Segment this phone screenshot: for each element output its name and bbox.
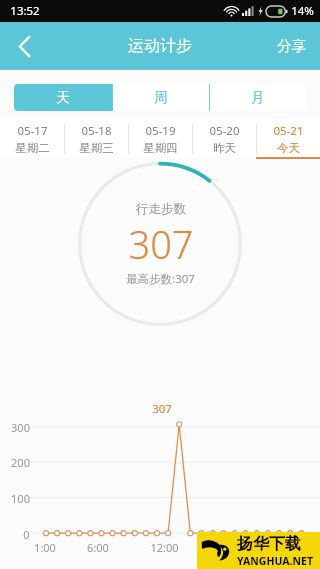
staticText: 12:00 [150, 540, 179, 555]
staticText: 昨天 [213, 141, 236, 155]
button[interactable]: Back [0, 22, 48, 70]
staticText: 今天 [277, 141, 300, 155]
button[interactable]: 05-21 [256, 118, 320, 159]
staticText: 13:52 [10, 3, 40, 19]
staticText: 100 [11, 491, 30, 506]
staticText: 运动计步 [128, 36, 192, 56]
staticText: 6:00 [87, 540, 109, 555]
button[interactable]: 月 [209, 84, 306, 111]
staticText: 天 [56, 89, 70, 106]
staticText: 05-20 [209, 123, 240, 139]
staticText: 0 [23, 527, 30, 542]
button[interactable]: 05-19 [128, 118, 192, 159]
button[interactable]: 天 [14, 84, 112, 111]
staticText: 307 [152, 401, 172, 417]
staticText: 05-18 [81, 123, 112, 139]
staticText: 月 [251, 89, 265, 106]
button[interactable]: 周 [112, 84, 209, 111]
button[interactable]: 05-18 [64, 118, 128, 159]
staticText: 05-21 [273, 123, 304, 139]
staticText: 1:00 [34, 540, 56, 555]
staticText: 星期二 [15, 141, 50, 155]
button[interactable]: 05-17 [0, 118, 64, 159]
staticText: 14% [291, 3, 314, 19]
staticText: 05-19 [145, 123, 176, 139]
button[interactable]: 分享 [263, 22, 320, 70]
staticText: 星期三 [79, 141, 114, 155]
staticText: 分享 [277, 37, 306, 55]
staticText: 300 [11, 420, 30, 435]
staticText: 星期四 [143, 141, 178, 155]
staticText: 05-17 [17, 123, 48, 139]
staticText: 扬华下载 [237, 534, 301, 554]
button[interactable]: 05-20 [192, 118, 256, 159]
staticText: 周 [154, 89, 168, 106]
staticText: 行走步数 [136, 201, 186, 217]
staticText: YANGHUA.NET [237, 554, 313, 568]
staticText: 最高步数:307 [126, 271, 195, 287]
staticText: 307 [128, 218, 194, 270]
staticText: 200 [11, 455, 30, 470]
